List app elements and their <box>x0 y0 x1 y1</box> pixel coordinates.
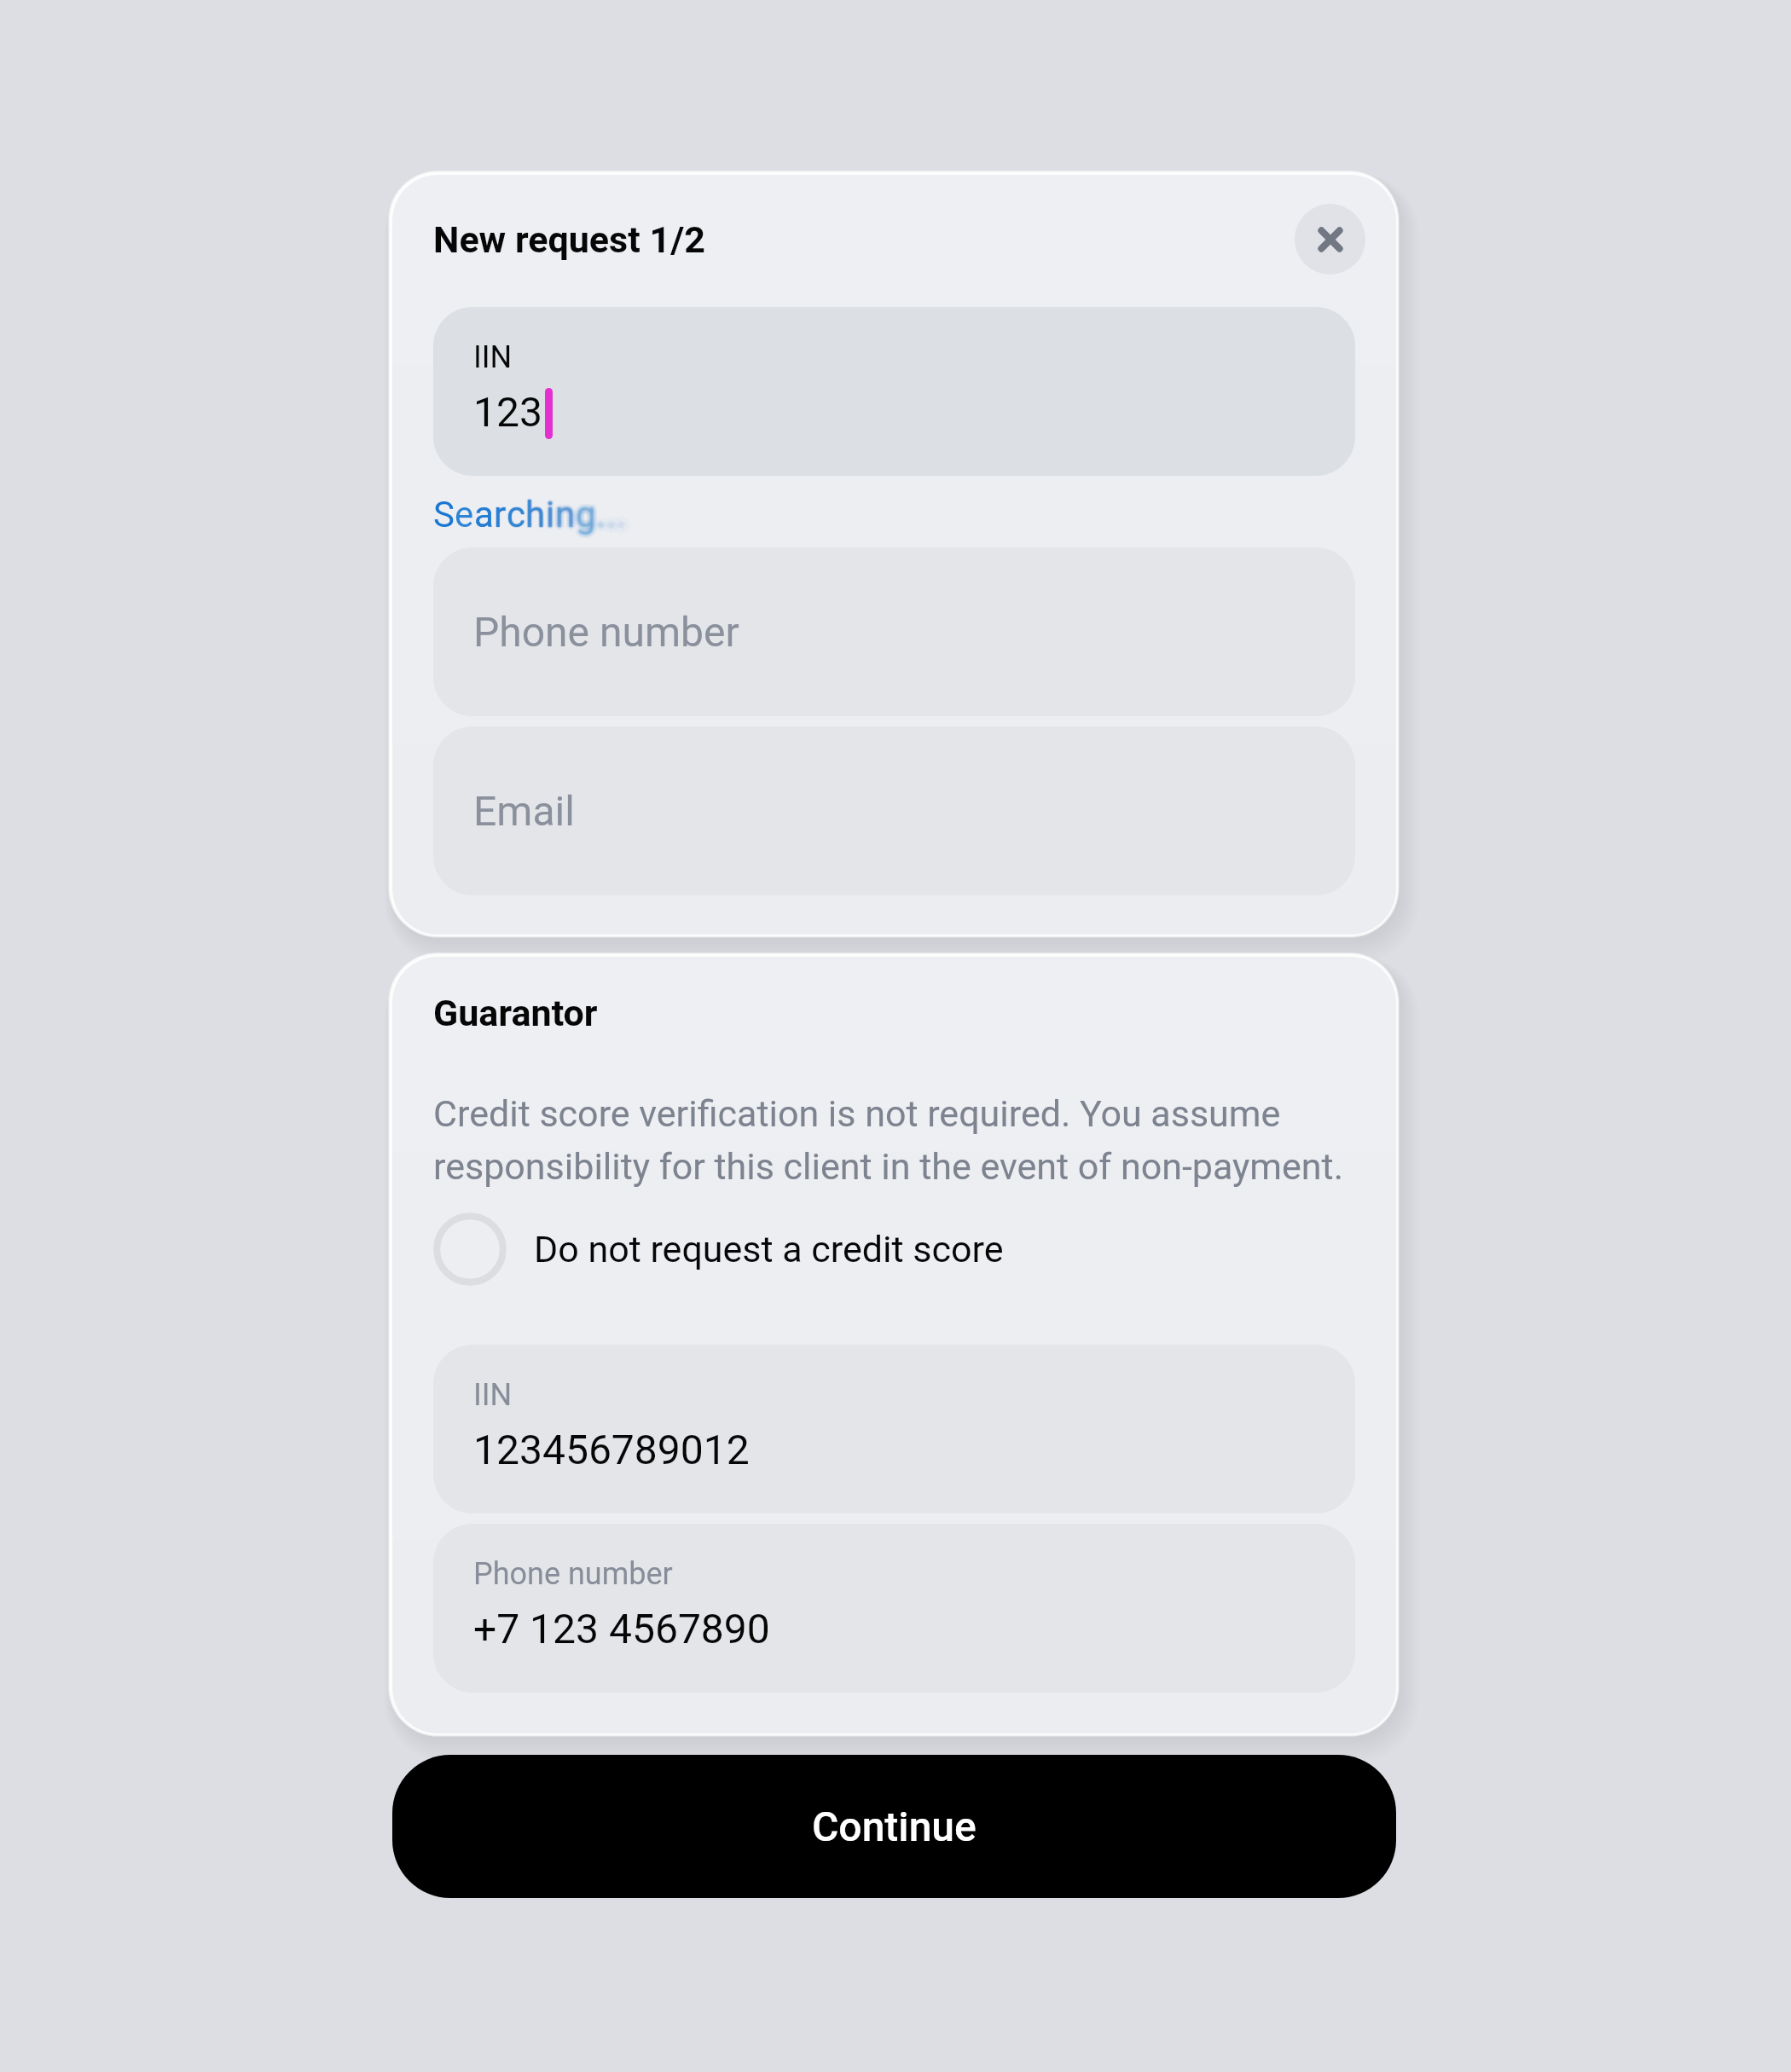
button[interactable]: Do not request a credit score <box>433 1213 1355 1286</box>
staticText: . <box>619 488 629 530</box>
staticText: c <box>506 494 525 535</box>
staticText: a <box>474 494 494 535</box>
staticText: . <box>596 494 606 535</box>
staticText: . <box>598 489 608 531</box>
staticText: n <box>552 494 572 535</box>
staticText: . <box>612 494 623 535</box>
staticText: . <box>608 499 618 541</box>
staticText: h <box>527 493 548 535</box>
staticText: New request 1/2 <box>433 218 705 261</box>
staticText: c <box>507 494 526 535</box>
staticText: r <box>494 494 507 535</box>
button[interactable]: Phone number <box>433 547 1355 716</box>
staticText: n <box>555 492 576 534</box>
staticText: a <box>474 494 494 535</box>
staticText: a <box>474 494 494 535</box>
staticText: a <box>474 494 494 535</box>
button[interactable]: Email <box>433 726 1355 895</box>
staticText: i <box>546 493 555 535</box>
staticText: . <box>606 495 616 537</box>
staticText: . <box>613 494 623 535</box>
staticText: n <box>555 495 576 537</box>
staticText: a <box>474 494 494 535</box>
staticText: r <box>494 494 507 535</box>
staticText: . <box>598 495 608 537</box>
staticText: n <box>554 494 574 535</box>
staticText: +7 123 4567890 <box>473 1605 770 1652</box>
staticText: g <box>579 493 600 535</box>
staticText: r <box>494 494 507 535</box>
staticText: i <box>545 494 554 535</box>
staticText: r <box>494 493 507 535</box>
staticText: e <box>455 494 474 535</box>
staticText: i <box>548 492 557 534</box>
staticText: g <box>572 497 593 539</box>
staticText: h <box>524 495 544 536</box>
staticText: a <box>474 494 494 535</box>
staticText: a <box>474 494 494 535</box>
staticText: c <box>507 494 525 535</box>
staticText: a <box>474 494 494 535</box>
staticText: r <box>494 494 507 535</box>
staticText: n <box>554 496 575 538</box>
staticText: . <box>615 495 625 536</box>
button[interactable]: Close <box>1295 204 1365 275</box>
staticText: r <box>493 494 506 535</box>
staticText: i <box>546 496 555 538</box>
staticText: g <box>575 495 595 536</box>
button[interactable]: IIN <box>433 1345 1355 1513</box>
staticText: g <box>579 497 600 539</box>
staticText: n <box>553 495 573 536</box>
staticText: i <box>545 492 554 534</box>
staticText: r <box>494 494 507 535</box>
staticText: . <box>608 495 618 536</box>
staticText: n <box>555 490 576 532</box>
staticText: n <box>555 493 576 535</box>
staticText: . <box>617 498 627 540</box>
button[interactable]: Continue <box>392 1755 1396 1898</box>
staticText: g <box>577 495 598 537</box>
staticText: . <box>617 489 627 531</box>
staticText: . <box>620 491 630 533</box>
staticText: . <box>611 496 621 538</box>
staticText: h <box>527 494 548 535</box>
staticText: a <box>474 494 494 535</box>
staticText: i <box>547 492 556 534</box>
staticText: . <box>611 495 622 537</box>
staticText: g <box>577 494 597 535</box>
staticText: . <box>605 493 615 535</box>
staticText: h <box>526 493 547 535</box>
staticText: n <box>556 494 577 535</box>
staticText: a <box>474 494 494 535</box>
staticText: g <box>572 492 593 534</box>
staticText: c <box>507 494 525 535</box>
button[interactable]: Phone number <box>433 1524 1355 1693</box>
staticText: i <box>546 494 555 535</box>
staticText: . <box>596 496 606 538</box>
staticText: h <box>525 495 545 536</box>
staticText: h <box>525 495 546 537</box>
staticText: . <box>592 489 602 531</box>
staticText: i <box>543 494 553 535</box>
staticText: . <box>590 494 600 535</box>
staticText: c <box>507 493 526 535</box>
staticText: h <box>525 494 546 535</box>
staticText: n <box>555 495 576 536</box>
staticText: a <box>474 494 494 535</box>
staticText: g <box>574 492 594 534</box>
staticText: i <box>547 493 556 535</box>
staticText: h <box>526 493 547 535</box>
staticText: a <box>474 494 494 535</box>
staticText: g <box>577 490 598 532</box>
staticText: . <box>598 492 608 534</box>
staticText: a <box>474 494 494 535</box>
staticText: . <box>618 493 629 535</box>
staticText: . <box>614 490 624 532</box>
staticText: n <box>556 494 577 535</box>
staticText: n <box>558 491 578 533</box>
staticText: i <box>548 493 557 535</box>
button[interactable]: IIN <box>433 307 1355 476</box>
staticText: c <box>507 495 525 536</box>
staticText: h <box>526 495 547 536</box>
staticText: c <box>507 494 525 535</box>
